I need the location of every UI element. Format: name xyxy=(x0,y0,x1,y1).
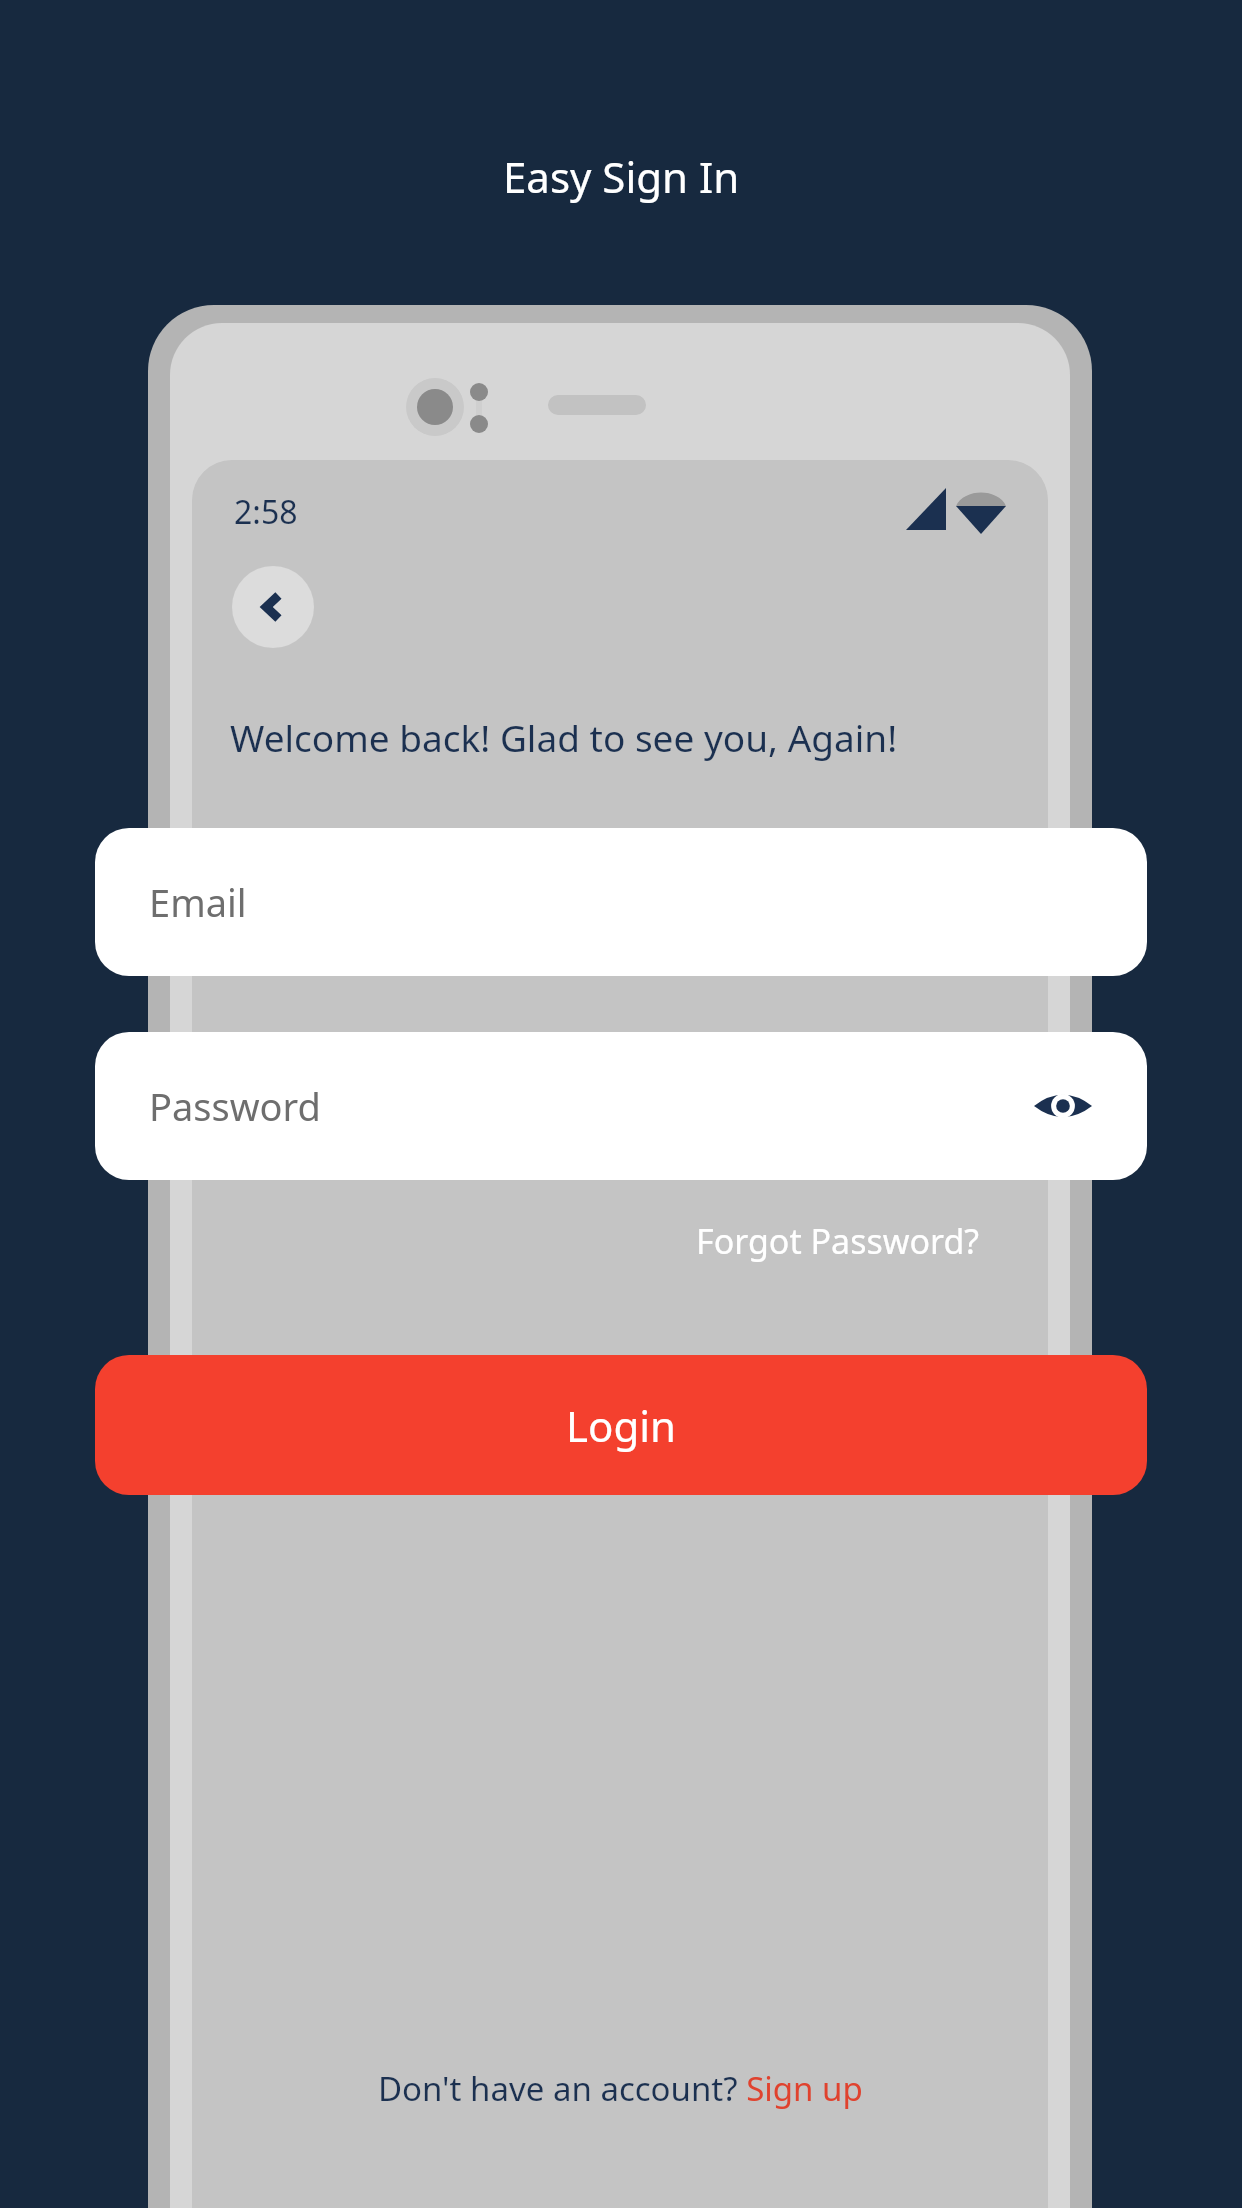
staticText: Password xyxy=(149,1080,321,1132)
staticText: Don't have an account? Sign up xyxy=(378,2066,863,2111)
button[interactable]: Email xyxy=(95,828,1147,976)
button[interactable]: Forgot Password? xyxy=(690,1212,986,1270)
staticText: Forgot Password? xyxy=(696,1218,980,1264)
staticText: Email xyxy=(149,876,247,928)
staticText: Welcome back! Glad to see you, Again! xyxy=(230,712,898,762)
button[interactable]: Back xyxy=(232,566,314,648)
button[interactable]: Don't have an account? Sign up xyxy=(370,2060,871,2117)
button[interactable]: Login xyxy=(95,1355,1147,1495)
button[interactable]: Password xyxy=(95,1032,1147,1180)
staticText: Easy Sign In xyxy=(503,148,740,205)
staticText: 2:58 xyxy=(234,490,298,534)
button[interactable]: Show password xyxy=(1027,1070,1099,1142)
staticText: Login xyxy=(566,1397,677,1454)
